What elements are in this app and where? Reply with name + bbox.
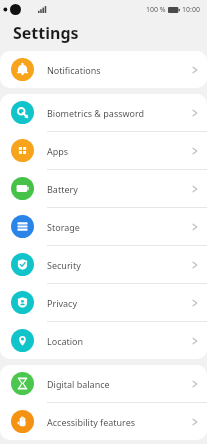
staticText: Digital balance (47, 378, 110, 390)
button[interactable]: Notifications (0, 51, 207, 88)
staticText: Privacy (47, 297, 78, 309)
staticText: Location (47, 335, 84, 347)
button[interactable]: Privacy (0, 284, 207, 322)
staticText: 100 % (146, 5, 166, 15)
button[interactable]: Apps (0, 132, 207, 170)
staticText: Security (47, 259, 81, 271)
button[interactable]: Biometrics & password (0, 94, 207, 132)
button[interactable]: Storage (0, 208, 207, 246)
button[interactable]: Battery (0, 170, 207, 208)
staticText: Biometrics & password (47, 107, 145, 119)
staticText: Storage (47, 221, 80, 233)
staticText: Settings (13, 22, 79, 44)
button[interactable]: Location (0, 322, 207, 359)
staticText: 10:00 (182, 5, 200, 15)
staticText: Apps (47, 145, 69, 157)
button[interactable]: Digital balance (0, 365, 207, 403)
button[interactable]: Accessibility features (0, 403, 207, 440)
button[interactable]: Security (0, 246, 207, 284)
staticText: Battery (47, 183, 78, 195)
staticText: Accessibility features (47, 416, 136, 428)
staticText: Notifications (47, 64, 101, 76)
